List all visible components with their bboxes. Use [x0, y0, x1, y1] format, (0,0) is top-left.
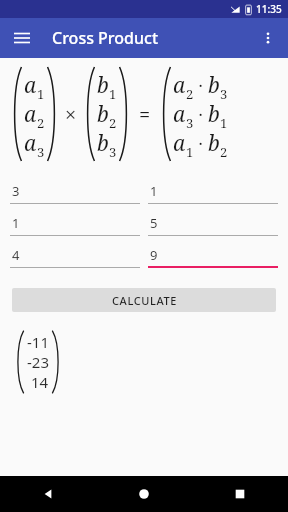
staticText: b [208, 129, 220, 158]
button[interactable]: 5 [148, 214, 278, 236]
staticText: 3 [186, 114, 194, 132]
staticText: -11 [27, 332, 49, 352]
staticText: a [173, 129, 186, 158]
staticText: 2 [109, 114, 117, 132]
staticText: 2 [220, 143, 228, 161]
staticText: · [194, 132, 208, 155]
staticText: 3 [109, 143, 117, 161]
staticText: 4 [12, 246, 20, 264]
button[interactable]: 3 [10, 182, 140, 204]
staticText: 3 [37, 143, 45, 161]
staticText: b [97, 71, 109, 100]
staticText: b [97, 129, 109, 158]
button[interactable]: 9 [148, 246, 278, 268]
staticText: × [65, 101, 77, 128]
button[interactable]: 4 [10, 246, 140, 268]
button[interactable]: More options [252, 22, 284, 54]
button[interactable]: 1 [10, 214, 140, 236]
staticText: CALCULATE [112, 293, 177, 308]
staticText: Cross Product [52, 27, 159, 49]
staticText: 11:35 [256, 2, 282, 16]
staticText: b [208, 100, 220, 129]
staticText: · [194, 74, 208, 97]
staticText: a [24, 100, 37, 129]
staticText: a [173, 71, 186, 100]
staticText: 3 [12, 182, 20, 200]
button[interactable]: Home [96, 476, 192, 512]
staticText: b [97, 100, 109, 129]
staticText: 14 [31, 372, 49, 392]
staticText: a [24, 71, 37, 100]
staticText: 2 [186, 85, 194, 103]
staticText: 1 [12, 214, 20, 232]
button[interactable]: Open navigation drawer [6, 22, 38, 54]
staticText: 2 [37, 114, 45, 132]
staticText: b [208, 71, 220, 100]
button[interactable]: Back [0, 476, 96, 512]
staticText: 1 [37, 85, 45, 103]
staticText: 1 [220, 114, 228, 132]
staticText: = [139, 101, 151, 128]
staticText: 1 [109, 85, 117, 103]
button[interactable]: 1 [148, 182, 278, 204]
staticText: 5 [150, 214, 158, 232]
staticText: 1 [150, 182, 158, 200]
staticText: a [173, 100, 186, 129]
staticText: · [194, 103, 208, 126]
button[interactable]: Recent apps [192, 476, 288, 512]
button[interactable]: CALCULATE [12, 288, 276, 312]
staticText: 1 [186, 143, 194, 161]
staticText: 9 [150, 246, 158, 264]
staticText: -23 [27, 352, 49, 372]
staticText: a [24, 129, 37, 158]
staticText: 3 [220, 85, 228, 103]
